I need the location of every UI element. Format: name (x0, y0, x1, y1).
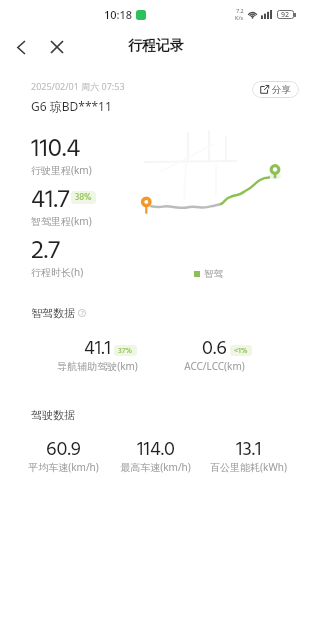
button[interactable]: Close (41, 31, 73, 63)
staticText: 最高车速(km/h) (120, 460, 191, 474)
staticText: 导航辅助驾驶(km) (57, 359, 138, 373)
staticText: 平均车速(km/h) (28, 460, 99, 474)
button[interactable]: Info (77, 308, 87, 318)
staticText: 2.7 (31, 231, 60, 273)
staticText: 驾驶数据 (31, 408, 75, 422)
staticText: 37% (118, 345, 133, 356)
button[interactable]: 分享 (252, 81, 299, 98)
staticText: 92 (281, 10, 290, 19)
staticText: K/s (235, 14, 244, 21)
staticText: 114.0 (137, 434, 175, 466)
staticText: 百公里能耗(kWh) (210, 460, 287, 474)
staticText: 智驾 (204, 268, 223, 280)
staticText: <1% (234, 345, 248, 356)
staticText: 分享 (272, 84, 291, 96)
staticText: 60.9 (46, 434, 81, 466)
staticText: 行程时长(h) (31, 265, 84, 279)
staticText: 38% (75, 191, 92, 204)
staticText: 智驾里程(km) (31, 214, 92, 228)
staticText: 41.7 (31, 180, 70, 222)
staticText: ? (81, 309, 84, 317)
staticText: ACC/LCC(km) (184, 359, 245, 373)
staticText: G6 琼BD***11 (31, 98, 112, 114)
staticText: 13.1 (236, 434, 262, 466)
button[interactable]: Back (5, 31, 37, 63)
staticText: 智驾数据 (31, 306, 75, 320)
staticText: 7.2 (236, 7, 244, 14)
staticText: 41.1 (84, 333, 112, 365)
staticText: 2025/02/01 周六 07:53 (31, 80, 125, 92)
staticText: 0.6 (202, 333, 227, 365)
staticText: 行程记录 (128, 37, 184, 55)
staticText: 110.4 (31, 129, 81, 171)
staticText: 行驶里程(km) (31, 163, 92, 177)
staticText: 10:18 (104, 7, 133, 22)
